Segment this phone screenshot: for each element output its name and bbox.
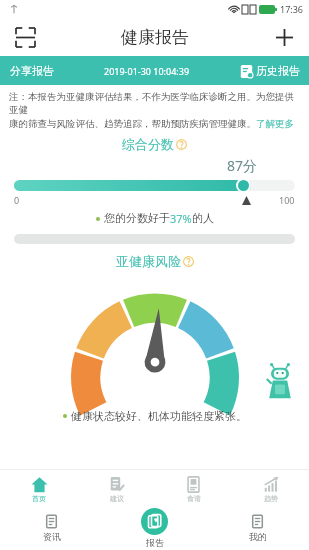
- staticText: 综合分数: [122, 136, 174, 152]
- button[interactable]: 了解更多: [256, 118, 294, 130]
- staticText: 趋势: [264, 494, 278, 503]
- button[interactable]: 分享报告: [10, 64, 54, 78]
- button[interactable]: 首页: [0, 474, 78, 503]
- staticText: 历史报告: [256, 64, 300, 78]
- staticText: 2019-01-30 10:04:39: [104, 65, 190, 77]
- staticText: 健康状态较好、机体功能轻度紧张。: [71, 409, 247, 423]
- staticText: 资讯: [43, 531, 61, 542]
- button[interactable]: 趋势: [232, 474, 309, 503]
- staticText: 分享报告: [10, 64, 54, 78]
- staticText: 建议: [110, 494, 124, 503]
- staticText: 的人: [192, 211, 214, 225]
- button[interactable]: Scan: [6, 18, 44, 56]
- staticText: 17:36: [280, 3, 304, 15]
- button[interactable]: 综合分数: [122, 136, 187, 152]
- staticText: 健康报告: [121, 27, 189, 48]
- staticText: 亚健康风险: [116, 253, 181, 269]
- button[interactable]: 历史报告: [240, 64, 300, 78]
- staticText: 您的分数好于: [104, 211, 170, 225]
- button[interactable]: 食谱: [155, 474, 232, 503]
- staticText: 我的: [249, 531, 267, 542]
- staticText: 报告: [146, 537, 164, 548]
- button[interactable]: 建议: [78, 474, 155, 503]
- staticText: 0: [14, 194, 20, 206]
- staticText: 康的筛查与风险评估、趋势追踪，帮助预防疾病管理健康。: [9, 118, 256, 130]
- staticText: 食谱: [187, 494, 201, 503]
- button[interactable]: 我的: [206, 514, 309, 542]
- staticText: 87分: [227, 156, 258, 175]
- staticText: 100: [279, 194, 295, 206]
- button[interactable]: 资讯: [0, 514, 103, 542]
- button[interactable]: 报告: [103, 508, 206, 548]
- button[interactable]: Add: [265, 18, 303, 56]
- button[interactable]: [14, 177, 295, 193]
- staticText: 37%: [170, 211, 192, 226]
- staticText: 注：本报告为亚健康评估结果，不作为医学临床诊断之用。为您提供亚健: [9, 91, 300, 115]
- button[interactable]: 亚健康风险: [116, 253, 194, 269]
- staticText: 首页: [32, 494, 46, 503]
- staticText: 了解更多: [256, 118, 294, 130]
